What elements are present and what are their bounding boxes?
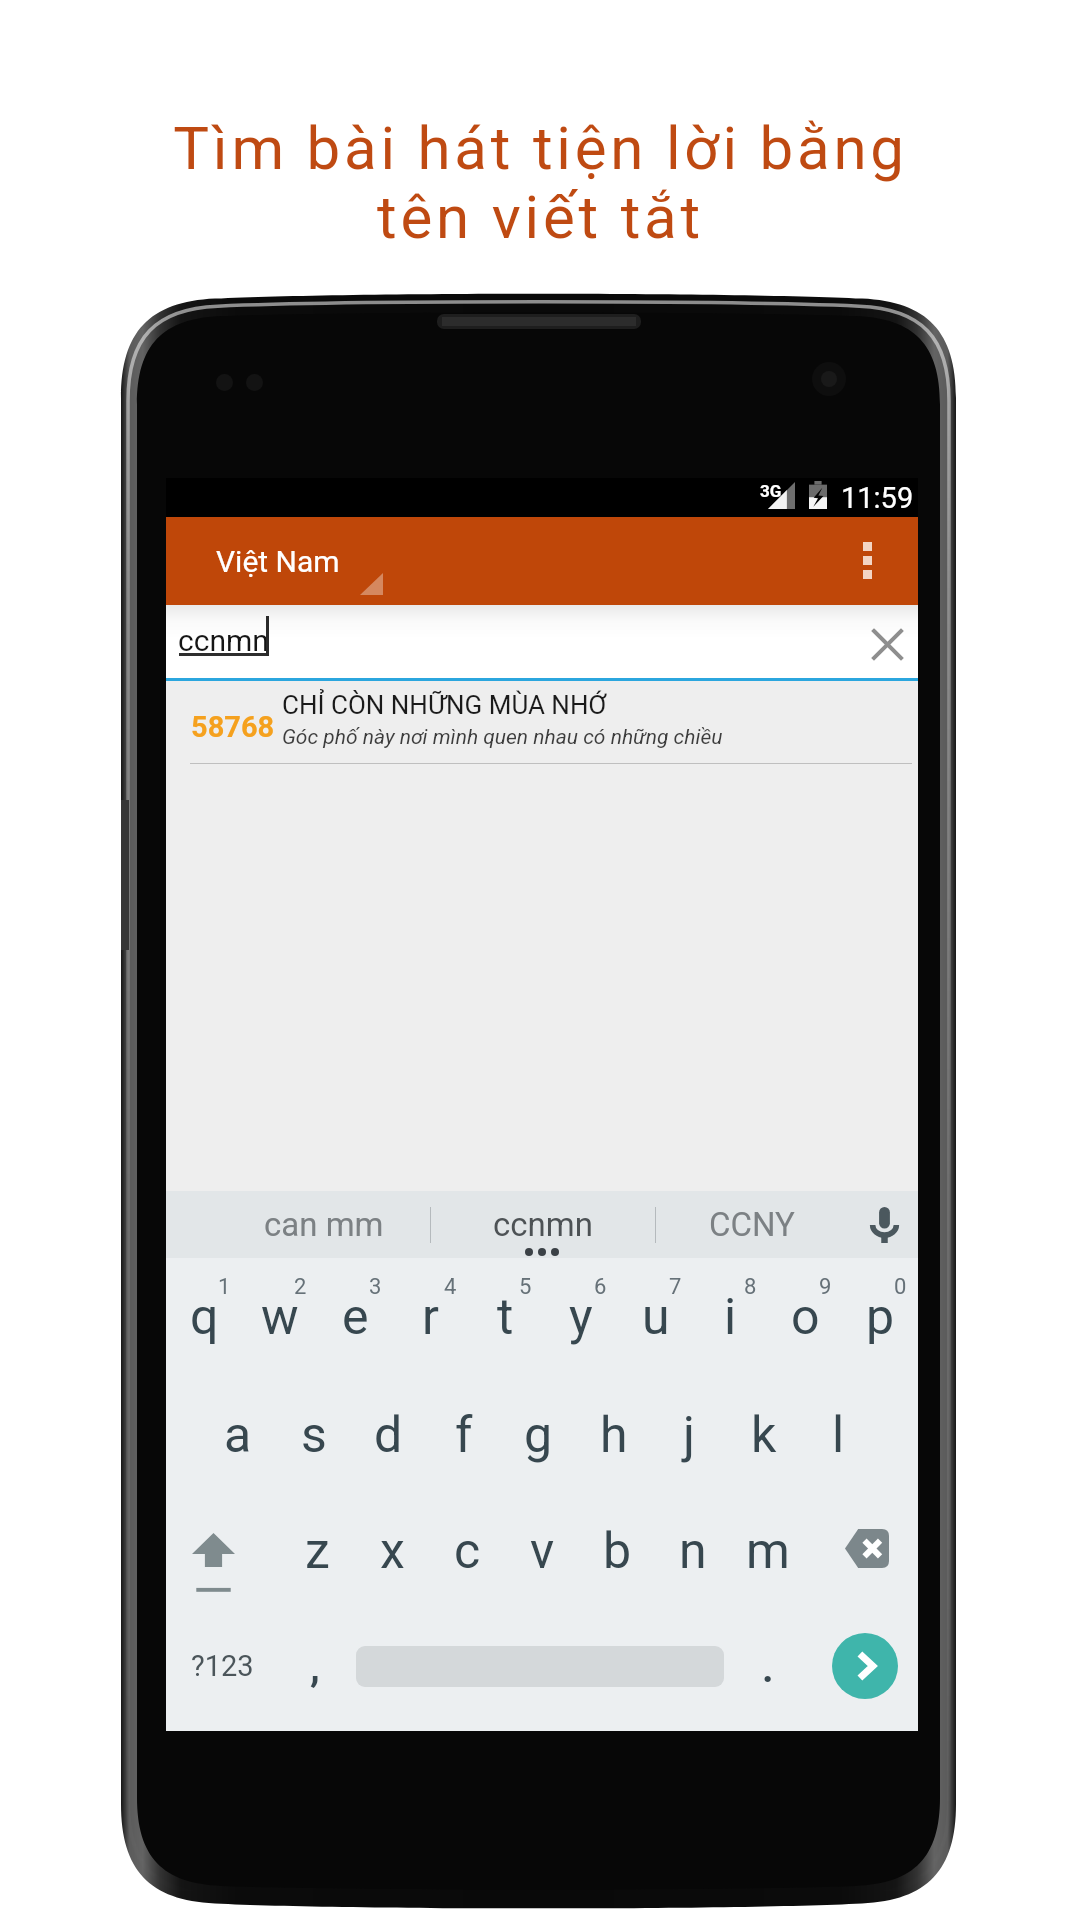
staticText: p <box>866 1288 895 1347</box>
staticText: 2 <box>294 1274 307 1300</box>
button[interactable]: 3 <box>318 1267 393 1343</box>
staticText: h <box>600 1406 628 1465</box>
staticText: 0 <box>894 1274 907 1300</box>
button[interactable]: n <box>655 1513 730 1589</box>
button[interactable]: Clear search <box>842 605 918 681</box>
button[interactable]: 9 <box>768 1267 843 1343</box>
button[interactable]: k <box>726 1397 801 1473</box>
staticText: a <box>224 1406 252 1465</box>
staticText: n <box>679 1522 707 1581</box>
staticText: u <box>642 1288 670 1347</box>
staticText: 3 <box>369 1274 382 1300</box>
button[interactable]: . <box>726 1621 800 1711</box>
staticText: j <box>683 1406 695 1465</box>
button[interactable]: ?123 <box>172 1621 272 1711</box>
staticText: 5 <box>519 1274 532 1300</box>
staticText: l <box>832 1406 845 1465</box>
staticText: 1 <box>218 1274 231 1300</box>
staticText: ?123 <box>191 1649 254 1683</box>
staticText: 58768 <box>191 710 275 744</box>
staticText: z <box>305 1522 330 1581</box>
staticText: CCNY <box>709 1205 795 1244</box>
staticText: CHỈ CÒN NHỮNG MÙA NHỚ <box>282 690 607 720</box>
button[interactable]: More options <box>838 517 918 605</box>
staticText: o <box>791 1288 820 1347</box>
staticText: d <box>374 1406 403 1465</box>
button[interactable]: g <box>501 1397 576 1473</box>
staticText: f <box>455 1406 473 1465</box>
button[interactable]: 4 <box>393 1267 468 1343</box>
button[interactable]: 58768 <box>166 681 918 764</box>
button[interactable]: Backspace <box>805 1513 918 1589</box>
staticText: 6 <box>594 1274 607 1300</box>
button[interactable]: f <box>426 1397 501 1473</box>
button[interactable]: 0 <box>843 1267 918 1343</box>
staticText: 9 <box>819 1274 832 1300</box>
staticText: ccnmn <box>493 1205 593 1244</box>
button[interactable]: 6 <box>543 1267 618 1343</box>
staticText: y <box>569 1288 593 1347</box>
button[interactable]: 7 <box>618 1267 693 1343</box>
button[interactable]: can mm <box>218 1191 430 1258</box>
staticText: g <box>524 1406 553 1465</box>
button[interactable]: Search <box>806 1621 918 1711</box>
staticText: i <box>724 1288 737 1347</box>
button[interactable]: v <box>505 1513 580 1589</box>
staticText: Góc phố này nơi mình quen nhau có những … <box>282 725 723 750</box>
staticText: k <box>751 1406 777 1465</box>
staticText: q <box>190 1288 219 1347</box>
staticText: b <box>603 1522 632 1581</box>
button[interactable]: Shift <box>166 1513 279 1589</box>
staticText: 8 <box>744 1274 757 1300</box>
staticText: Việt Nam <box>216 544 340 579</box>
button[interactable]: s <box>276 1397 351 1473</box>
button[interactable]: j <box>651 1397 726 1473</box>
button[interactable]: 2 <box>242 1267 318 1343</box>
staticText: 11:59 <box>841 481 914 515</box>
staticText: , <box>310 1644 320 1691</box>
button[interactable]: a <box>200 1397 276 1473</box>
button[interactable]: Voice input <box>847 1191 918 1258</box>
button[interactable]: Việt Nam <box>206 517 396 605</box>
button[interactable]: Space <box>352 1621 728 1711</box>
staticText: . <box>762 1645 774 1692</box>
button[interactable]: x <box>355 1513 430 1589</box>
button[interactable]: d <box>351 1397 426 1473</box>
staticText: r <box>422 1288 439 1347</box>
button[interactable]: b <box>580 1513 655 1589</box>
button[interactable]: l <box>801 1397 876 1473</box>
button[interactable]: h <box>576 1397 651 1473</box>
button[interactable]: ccnmn <box>431 1191 655 1258</box>
staticText: t <box>497 1288 514 1347</box>
staticText: x <box>380 1522 405 1581</box>
staticText: ccnmn <box>178 623 269 658</box>
staticText: 4 <box>444 1274 457 1300</box>
staticText: 7 <box>669 1274 682 1300</box>
staticText: s <box>301 1406 327 1465</box>
button[interactable]: , <box>278 1621 350 1711</box>
staticText: w <box>261 1288 299 1347</box>
button[interactable]: 1 <box>166 1267 242 1343</box>
staticText: c <box>454 1522 481 1581</box>
button[interactable]: c <box>430 1513 505 1589</box>
button[interactable]: 5 <box>468 1267 543 1343</box>
staticText: v <box>530 1522 555 1581</box>
staticText: Tìm bài hát tiện lời bằng tên viết tắt <box>173 113 908 253</box>
button[interactable]: 8 <box>693 1267 768 1343</box>
button[interactable]: CCNY <box>656 1191 847 1258</box>
button[interactable]: z <box>279 1513 355 1589</box>
button[interactable]: m <box>730 1513 805 1589</box>
staticText: 3G <box>760 481 782 501</box>
staticText: e <box>342 1288 369 1347</box>
staticText: can mm <box>264 1205 384 1244</box>
staticText: m <box>746 1522 790 1581</box>
